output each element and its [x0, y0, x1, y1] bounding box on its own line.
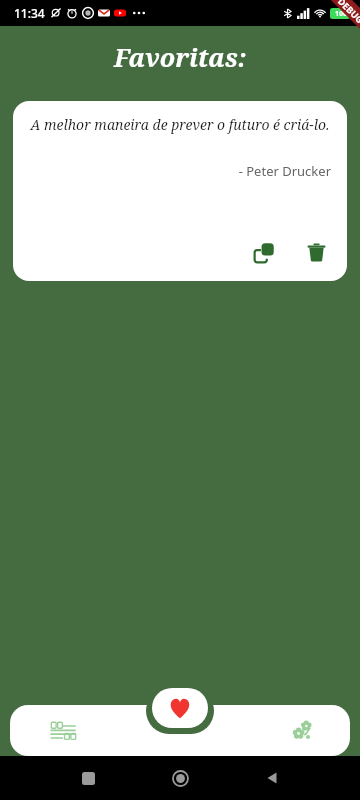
button[interactable]: Frases: [10, 705, 140, 756]
button[interactable]: Excluir: [299, 235, 333, 269]
button[interactable]: A melhor maneira de prever o futuro é cr…: [13, 101, 347, 281]
staticText: A melhor maneira de prever o futuro é cr…: [29, 115, 331, 134]
staticText: 11:34: [14, 5, 45, 21]
button[interactable]: Favoritas: [152, 688, 208, 728]
staticText: 100: [335, 9, 348, 19]
staticText: Favoritas:: [114, 40, 247, 74]
button[interactable]: Recents: [72, 762, 104, 794]
staticText: DEBUG: [336, 0, 360, 25]
button[interactable]: Home: [164, 762, 196, 794]
button[interactable]: Back: [256, 762, 288, 794]
button[interactable]: Copiar: [247, 235, 281, 269]
button[interactable]: Flores: [220, 705, 350, 756]
staticText: - Peter Drucker: [13, 162, 331, 180]
